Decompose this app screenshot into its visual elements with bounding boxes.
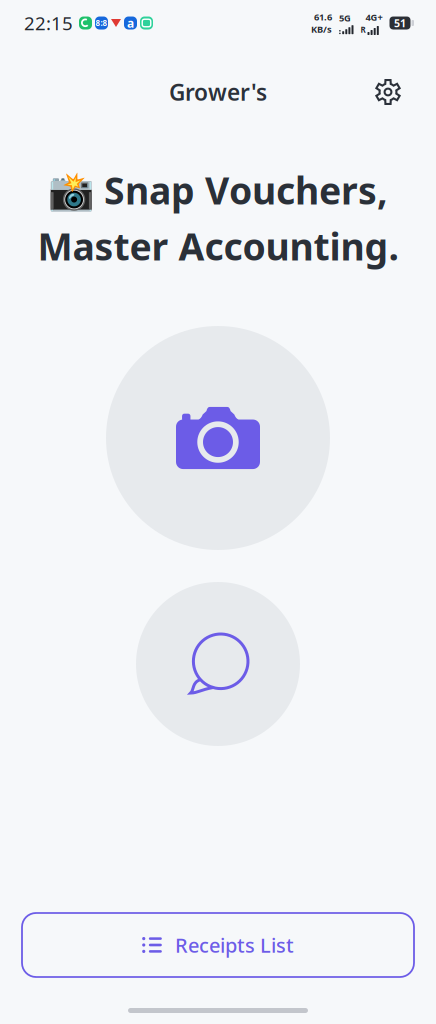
- staticText: Master Accounting.: [37, 221, 398, 271]
- staticText: a: [127, 15, 134, 31]
- staticText: 5G: [339, 12, 351, 24]
- staticText: Grower's: [169, 77, 267, 107]
- staticText: KB/s: [311, 23, 332, 35]
- staticText: 51: [394, 16, 406, 30]
- button[interactable]: Settings: [366, 70, 410, 114]
- staticText: 61.6: [314, 11, 332, 23]
- button[interactable]: Chat assistant: [136, 582, 300, 746]
- button[interactable]: Scan receipt: [106, 326, 330, 550]
- staticText: 📸 Snap Vouchers,: [48, 165, 388, 215]
- staticText: 4G+: [365, 11, 382, 23]
- staticText: Receipts List: [175, 932, 294, 958]
- staticText: 22:15: [24, 11, 73, 35]
- staticText: R: [360, 24, 365, 35]
- staticText: 8:8: [95, 18, 107, 28]
- button[interactable]: Receipts List: [22, 913, 414, 977]
